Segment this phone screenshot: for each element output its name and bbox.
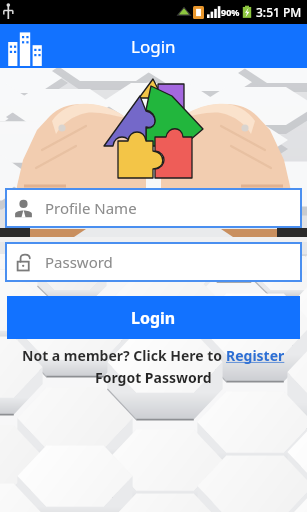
button[interactable]: Forgot Password (95, 368, 212, 387)
staticText: 3:51 PM (256, 4, 302, 20)
button[interactable]: Login (7, 296, 300, 339)
staticText: 90% (221, 6, 240, 18)
staticText: Login (131, 35, 176, 58)
staticText: Profile Name (45, 198, 137, 218)
button[interactable]: Profile Name (5, 188, 302, 228)
staticText: Login (131, 307, 176, 329)
staticText: Not a member? Click Here to (22, 346, 226, 365)
button[interactable]: App icon (5, 26, 45, 66)
button[interactable]: Register (226, 346, 285, 365)
button[interactable]: Password (5, 242, 302, 282)
staticText: Password (45, 252, 113, 272)
